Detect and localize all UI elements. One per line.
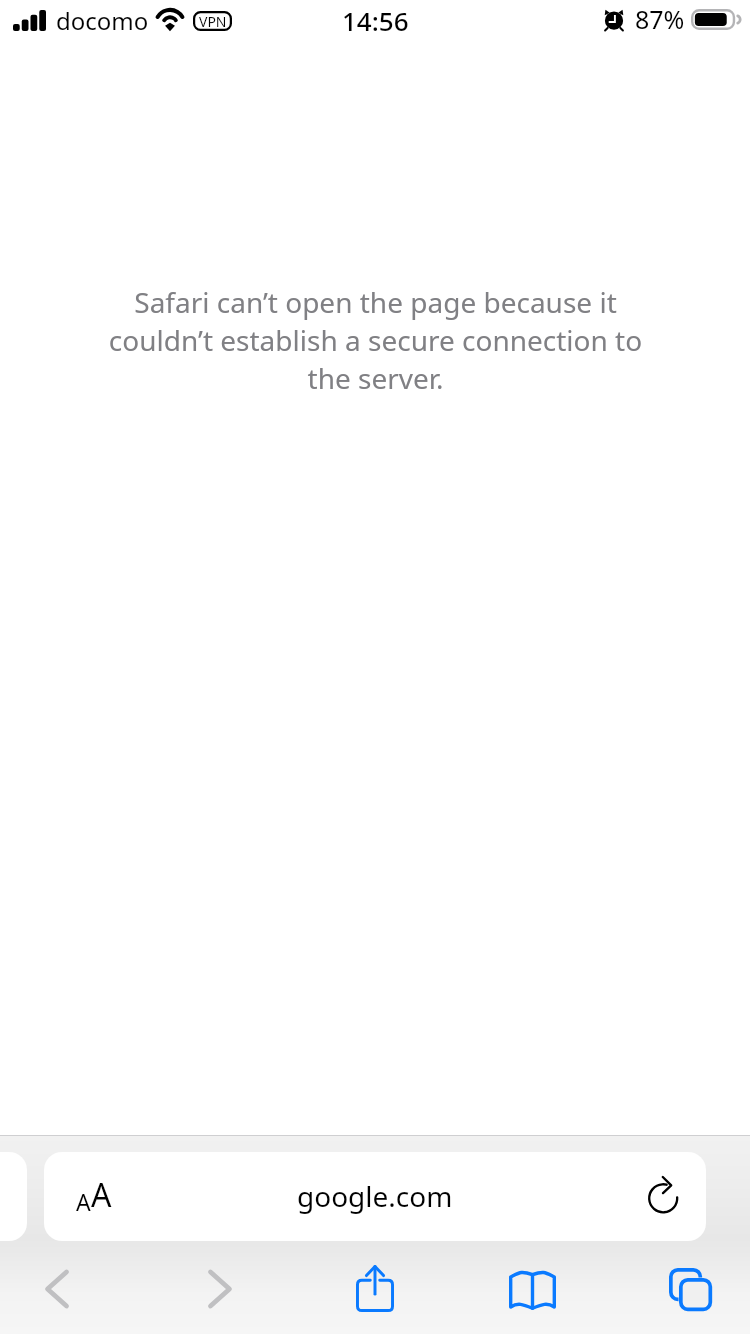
- button[interactable]: Text size options: [44, 1152, 706, 1241]
- staticText: 14:56: [342, 3, 409, 38]
- staticText: 87%: [635, 2, 685, 36]
- button[interactable]: Previous tab: [0, 1152, 27, 1241]
- staticText: google.com: [297, 1177, 453, 1215]
- button[interactable]: google.com: [149, 1152, 601, 1241]
- button[interactable]: Forward: [192, 1261, 248, 1317]
- button[interactable]: Reload page: [601, 1152, 706, 1241]
- staticText: A: [76, 1186, 91, 1217]
- staticText: VPN: [199, 12, 227, 31]
- button[interactable]: Share: [345, 1258, 405, 1318]
- staticText: A: [91, 1173, 112, 1217]
- staticText: docomo: [56, 4, 149, 37]
- button[interactable]: Tabs: [661, 1260, 721, 1320]
- button[interactable]: Text size options: [44, 1152, 149, 1241]
- button[interactable]: Bookmarks: [502, 1260, 562, 1320]
- button[interactable]: Back: [29, 1261, 85, 1317]
- staticText: Safari can’t open the page because it co…: [103, 283, 648, 397]
